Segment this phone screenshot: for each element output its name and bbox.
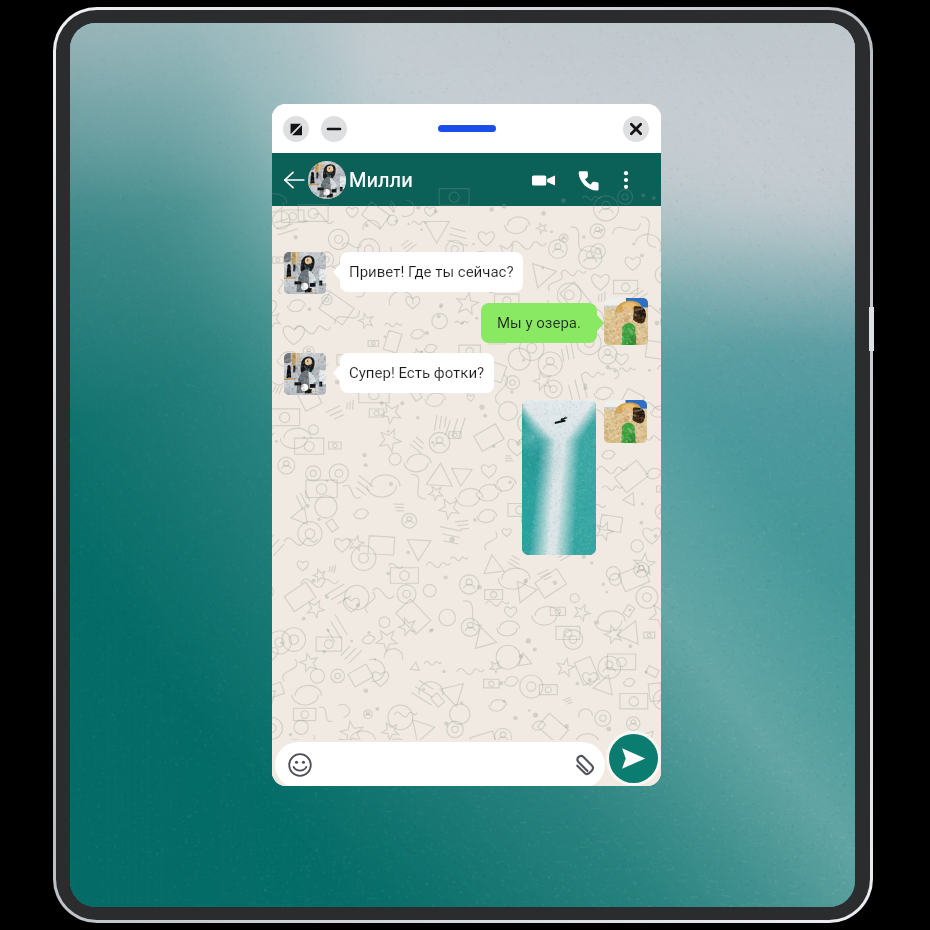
button[interactable]: Привет! Где ты сейчас? [333, 252, 523, 292]
button[interactable]: Close window [623, 116, 649, 142]
button[interactable]: More options [613, 167, 639, 193]
button[interactable]: Your photo [604, 298, 648, 345]
button[interactable]: Супер! Есть фотки? [333, 353, 494, 393]
staticText: Мы у озера. [497, 314, 581, 332]
button[interactable]: Restore window [283, 116, 309, 142]
button[interactable]: Move window [438, 125, 496, 132]
button[interactable]: Minimize window [321, 116, 347, 142]
button[interactable]: Мы у озера. [481, 303, 604, 343]
button[interactable]: Voice call [573, 165, 603, 195]
staticText: Милли [349, 168, 413, 191]
button[interactable]: Photo of the lake [522, 400, 596, 555]
staticText: Привет! Где ты сейчас? [349, 263, 514, 281]
button[interactable]: Video call [527, 164, 559, 196]
staticText: Супер! Есть фотки? [349, 364, 485, 382]
button[interactable]: Contact photo [308, 161, 346, 199]
button[interactable]: Back [281, 167, 307, 193]
button[interactable]: Send [609, 734, 658, 783]
button[interactable]: Type a message [275, 742, 605, 786]
